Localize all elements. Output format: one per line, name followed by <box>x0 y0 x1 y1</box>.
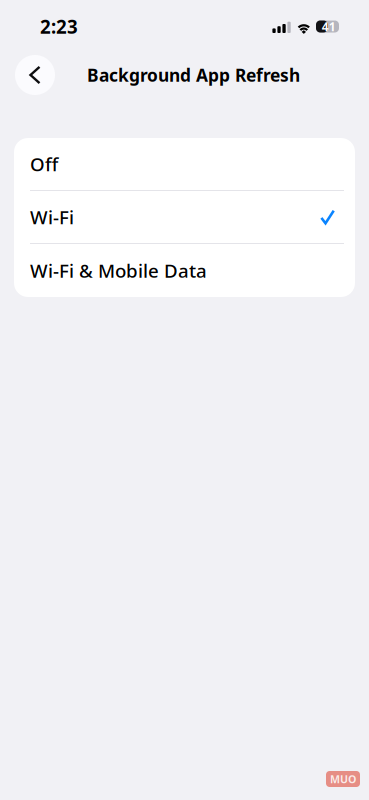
button[interactable]: Wi-Fi & Mobile Data <box>14 244 355 297</box>
staticText: 41 <box>322 18 336 34</box>
staticText: Wi-Fi <box>30 205 74 229</box>
button[interactable]: Off <box>14 138 355 191</box>
staticText: Wi-Fi & Mobile Data <box>30 258 207 283</box>
button[interactable]: Back <box>15 55 55 95</box>
staticText: 2:23 <box>40 14 78 39</box>
staticText: Off <box>30 152 58 176</box>
staticText: Background App Refresh <box>87 63 300 86</box>
staticText: MUO <box>330 772 356 786</box>
button[interactable]: Wi-Fi <box>14 191 355 244</box>
